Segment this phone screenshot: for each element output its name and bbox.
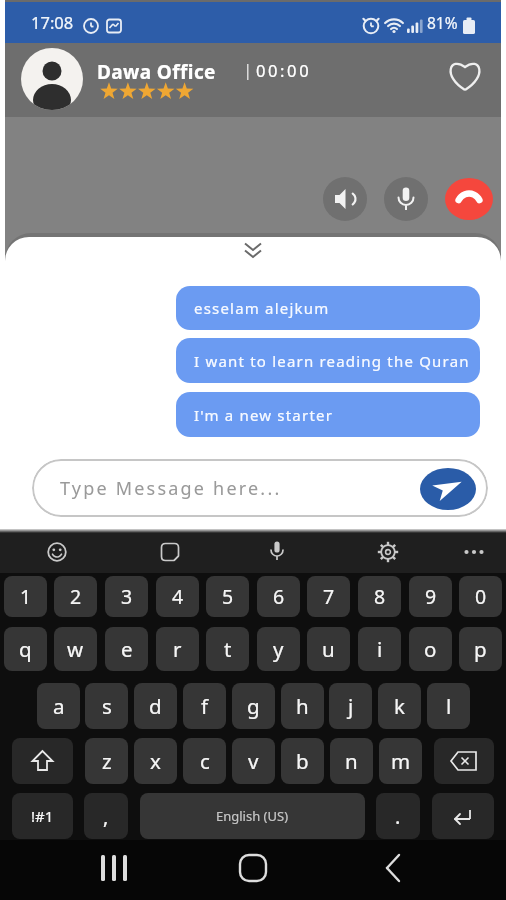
button[interactable] bbox=[456, 534, 492, 570]
staticText: 2 bbox=[70, 583, 82, 610]
button[interactable]: I'm a new starter bbox=[176, 392, 480, 437]
button[interactable]: 7 bbox=[307, 576, 350, 617]
button[interactable]: 9 bbox=[409, 576, 452, 617]
button[interactable]: o bbox=[409, 627, 452, 671]
button[interactable]: . bbox=[376, 793, 420, 839]
button[interactable]: l bbox=[427, 683, 470, 729]
staticText: 6 bbox=[273, 583, 285, 610]
button[interactable]: p bbox=[459, 627, 502, 671]
button[interactable] bbox=[434, 738, 494, 784]
staticText: f bbox=[201, 692, 209, 720]
button[interactable]: w bbox=[54, 627, 97, 671]
button[interactable]: t bbox=[206, 627, 249, 671]
button[interactable]: c bbox=[183, 738, 226, 784]
staticText: 8 bbox=[374, 583, 386, 610]
button[interactable]: d bbox=[134, 683, 177, 729]
staticText: k bbox=[394, 692, 405, 720]
button[interactable]: !#1 bbox=[12, 793, 73, 839]
button[interactable]: I want to learn reading the Quran bbox=[176, 338, 480, 383]
button[interactable] bbox=[259, 533, 295, 569]
staticText: u bbox=[322, 635, 335, 663]
button[interactable] bbox=[370, 534, 406, 570]
staticText: I want to learn reading the Quran bbox=[194, 351, 470, 371]
staticText: esselam alejkum bbox=[194, 298, 330, 318]
staticText: 5 bbox=[222, 583, 234, 610]
button[interactable] bbox=[140, 793, 365, 839]
staticText: h bbox=[296, 692, 309, 720]
staticText: 4 bbox=[172, 583, 184, 610]
button[interactable]: n bbox=[330, 738, 373, 784]
button[interactable]: 1 bbox=[4, 576, 47, 617]
staticText: e bbox=[121, 635, 133, 663]
button[interactable] bbox=[444, 58, 486, 96]
button[interactable]: 3 bbox=[105, 576, 148, 617]
staticText: l bbox=[446, 692, 452, 720]
staticText: Type Message here... bbox=[60, 476, 282, 501]
button[interactable]: Type Message here... bbox=[32, 459, 488, 517]
button[interactable]: z bbox=[85, 738, 128, 784]
staticText: o bbox=[424, 635, 437, 663]
button[interactable]: 6 bbox=[257, 576, 300, 617]
button[interactable] bbox=[39, 534, 75, 570]
staticText: n bbox=[345, 747, 358, 775]
staticText: d bbox=[149, 692, 162, 720]
button[interactable] bbox=[12, 738, 73, 784]
staticText: 3 bbox=[121, 583, 133, 610]
staticText: v bbox=[248, 747, 259, 775]
button[interactable]: k bbox=[378, 683, 421, 729]
button[interactable] bbox=[368, 845, 418, 893]
button[interactable]: x bbox=[134, 738, 177, 784]
button[interactable]: u bbox=[307, 627, 350, 671]
staticText: x bbox=[150, 747, 161, 775]
staticText: Dawa Office bbox=[97, 59, 216, 85]
button[interactable]: a bbox=[37, 683, 80, 729]
button[interactable] bbox=[432, 793, 494, 839]
staticText: | bbox=[243, 58, 253, 81]
button[interactable] bbox=[228, 845, 278, 893]
staticText: 17:08 bbox=[31, 11, 74, 33]
button[interactable] bbox=[323, 177, 367, 221]
staticText: s bbox=[102, 692, 112, 720]
staticText: . bbox=[395, 803, 401, 830]
button[interactable]: esselam alejkum bbox=[176, 286, 480, 330]
button[interactable]: 4 bbox=[156, 576, 199, 617]
button[interactable] bbox=[152, 534, 188, 570]
button[interactable]: r bbox=[156, 627, 199, 671]
button[interactable]: m bbox=[379, 738, 422, 784]
staticText: b bbox=[296, 747, 309, 775]
button[interactable]: v bbox=[232, 738, 275, 784]
staticText: a bbox=[53, 692, 65, 720]
staticText: 00:00 bbox=[256, 59, 312, 81]
staticText: !#1 bbox=[31, 806, 54, 826]
staticText: 7 bbox=[323, 583, 335, 610]
button[interactable]: , bbox=[84, 793, 128, 839]
button[interactable]: j bbox=[329, 683, 372, 729]
button[interactable]: 5 bbox=[206, 576, 249, 617]
button[interactable] bbox=[90, 845, 140, 893]
staticText: , bbox=[103, 803, 109, 830]
button[interactable]: y bbox=[257, 627, 300, 671]
staticText: 0 bbox=[475, 583, 487, 610]
staticText: m bbox=[391, 747, 411, 775]
staticText: g bbox=[247, 692, 260, 720]
button[interactable]: i bbox=[358, 627, 401, 671]
button[interactable]: f bbox=[183, 683, 226, 729]
button[interactable]: b bbox=[281, 738, 324, 784]
button[interactable]: s bbox=[85, 683, 128, 729]
button[interactable]: q bbox=[4, 627, 47, 671]
button[interactable]: 8 bbox=[358, 576, 401, 617]
button[interactable]: e bbox=[105, 627, 148, 671]
button[interactable] bbox=[420, 468, 476, 510]
staticText: 81% bbox=[427, 12, 458, 33]
staticText: 9 bbox=[425, 583, 437, 610]
staticText: q bbox=[19, 635, 32, 663]
button[interactable]: g bbox=[232, 683, 275, 729]
button[interactable]: 2 bbox=[54, 576, 97, 617]
staticText: w bbox=[67, 635, 84, 663]
staticText: t bbox=[224, 635, 232, 663]
button[interactable]: 0 bbox=[459, 576, 502, 617]
button[interactable]: h bbox=[281, 683, 324, 729]
button[interactable] bbox=[21, 48, 83, 110]
button[interactable] bbox=[384, 177, 428, 221]
button[interactable] bbox=[445, 178, 493, 220]
